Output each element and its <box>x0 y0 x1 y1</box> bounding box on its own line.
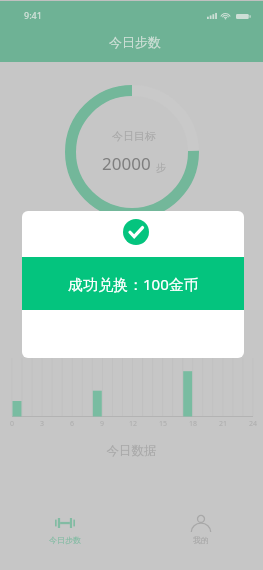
staticText: 今日目标 <box>112 129 156 143</box>
staticText: 9 <box>95 419 109 429</box>
staticText: 12 <box>126 419 140 429</box>
button[interactable]: 今日步数 <box>30 507 100 570</box>
staticText: 我的 <box>193 535 209 545</box>
staticText: 成功兑换：100金币 <box>68 274 199 294</box>
staticText: 9:41 <box>24 9 42 21</box>
staticText: 6 <box>65 419 79 429</box>
staticText: 20000 <box>102 152 151 175</box>
staticText: 今日步数 <box>109 34 161 50</box>
staticText: 15 <box>156 419 170 429</box>
staticText: 3 <box>35 419 49 429</box>
staticText: 0 <box>5 419 19 429</box>
button[interactable]: 成功兑换：100金币 <box>22 257 244 310</box>
staticText: 21 <box>216 419 230 429</box>
staticText: 步 <box>156 161 166 174</box>
staticText: 今日数据 <box>0 443 263 459</box>
staticText: 今日步数 <box>49 535 81 545</box>
staticText: 24 <box>246 419 260 429</box>
button[interactable]: 我的 <box>166 507 236 570</box>
staticText: 18 <box>186 419 200 429</box>
